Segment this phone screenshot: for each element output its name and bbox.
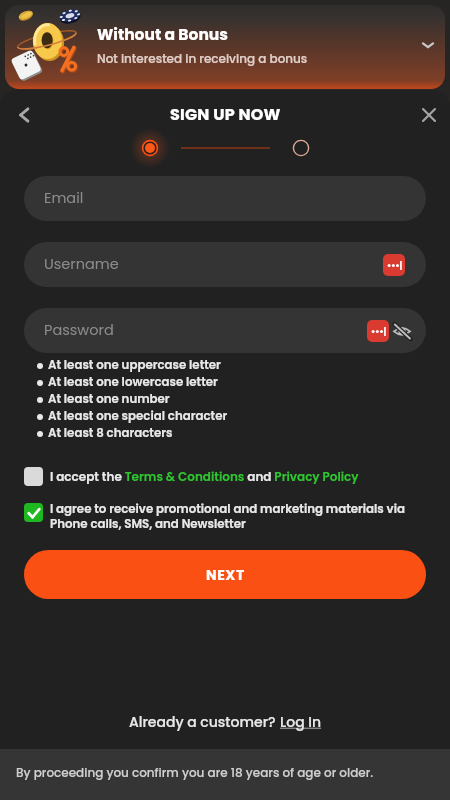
staticText: Not interested in receiving a bonus	[97, 50, 308, 67]
button[interactable]: I accept the Terms & Conditions and Priv…	[24, 467, 430, 486]
staticText: At least one lowercase letter	[48, 374, 218, 391]
button[interactable]: Without a Bonus	[5, 5, 445, 89]
button[interactable]: Log In	[280, 712, 322, 732]
staticText: Password	[44, 320, 114, 340]
staticText: At least one special character	[48, 408, 228, 425]
button[interactable]: Password	[24, 308, 426, 353]
staticText: Already a customer?	[129, 712, 280, 732]
staticText: SIGN UP NOW	[170, 103, 281, 125]
button[interactable]: NEXT	[24, 550, 426, 599]
staticText: I agree to receive promotional and marke…	[50, 501, 430, 532]
button[interactable]: Email	[24, 176, 426, 221]
staticText: I accept the Terms & Conditions and Priv…	[50, 468, 359, 485]
button[interactable]: Username	[24, 242, 426, 287]
button[interactable]: I agree to receive promotional and marke…	[24, 503, 430, 534]
staticText: NEXT	[206, 565, 245, 585]
button[interactable]: Back	[9, 100, 39, 130]
staticText: At least one number	[48, 391, 170, 408]
button[interactable]: Autofill password	[367, 320, 389, 342]
staticText: At least one uppercase letter	[48, 357, 221, 374]
button[interactable]: Expand	[413, 30, 443, 60]
button[interactable]: Autofill password	[383, 254, 405, 276]
button[interactable]: Close	[414, 100, 444, 130]
button[interactable]: Show password	[391, 320, 413, 342]
staticText: Without a Bonus	[97, 24, 228, 46]
staticText: At least 8 characters	[48, 425, 173, 442]
staticText: Email	[44, 188, 84, 208]
staticText: By proceeding you confirm you are 18 yea…	[16, 764, 374, 781]
staticText: Username	[44, 254, 119, 274]
